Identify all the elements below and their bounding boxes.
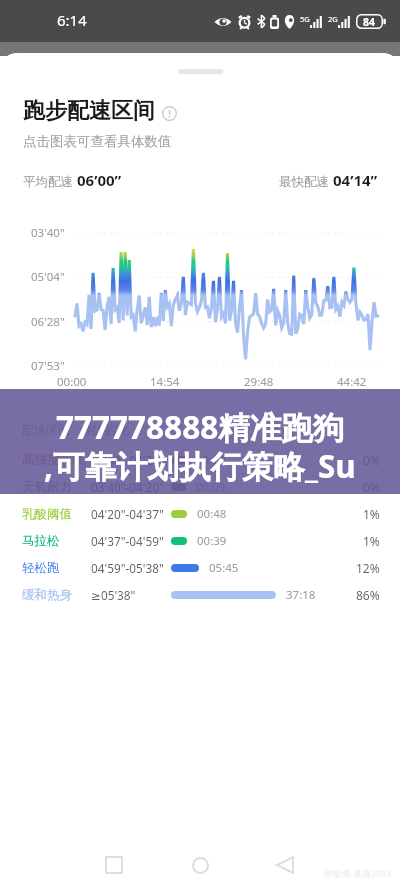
staticText: 37:18 (286, 587, 316, 603)
staticText: 平均配速 (23, 173, 77, 190)
staticText: 00:39 (197, 533, 227, 549)
staticText: 44:42 (337, 374, 367, 390)
staticText: 轻松跑 (22, 560, 60, 576)
staticText: 配速区间 (22, 422, 70, 437)
staticText: 1% (363, 506, 380, 522)
button[interactable]: Back (265, 845, 305, 885)
staticText: 29:48 (244, 374, 274, 390)
button[interactable]: 无氧耐力 (0, 473, 400, 500)
button[interactable]: 马拉松 (0, 527, 400, 554)
staticText: 04'59"-05'38" (91, 560, 164, 576)
staticText: 点击图表可查看具体数值 (23, 133, 172, 150)
staticText: 6:14 (57, 10, 87, 30)
staticText: 5G (300, 14, 310, 24)
staticText: 777778888精准跑狗 (56, 405, 345, 448)
staticText: ≥05'38" (91, 587, 136, 603)
staticText: ,可靠计划执行策略_Su (44, 444, 356, 487)
staticText: 04'20"-04'37" (91, 506, 164, 522)
staticText: 缓和热身 (22, 587, 72, 603)
staticText: 最快配速 (279, 173, 333, 190)
staticText: 0% (363, 452, 380, 468)
staticText: 03'40"-04'20" (91, 479, 164, 495)
staticText: 跑步配速区间 (23, 97, 155, 125)
staticText: 05:45 (209, 560, 239, 576)
staticText: 高强度间歇 (22, 452, 85, 468)
staticText: 无氧耐力 (22, 479, 72, 495)
staticText: 乳酸阈值 (22, 506, 72, 522)
button[interactable]: 高强度间歇 (0, 446, 400, 473)
staticText: 86% (356, 587, 380, 603)
staticText: 00:00 (57, 374, 87, 390)
staticText: 耗时 (86, 422, 110, 437)
staticText: 06’00” (77, 170, 122, 190)
staticText: 06'28" (31, 314, 65, 330)
staticText: 0% (363, 479, 380, 495)
staticText: 马拉松 (22, 533, 60, 549)
button[interactable]: Recents (94, 845, 134, 885)
staticText: 84 (363, 15, 376, 29)
staticText: 14:54 (150, 374, 180, 390)
staticText: 07'53" (31, 358, 65, 374)
staticText: 2G (328, 14, 338, 24)
staticText: 00:09 (196, 479, 226, 495)
staticText: 03'40"-04'20" (91, 452, 164, 468)
button[interactable]: Info (162, 106, 177, 121)
staticText: 占比 (106, 422, 130, 437)
staticText: 04'37"-04'59" (91, 533, 164, 549)
button[interactable]: 缓和热身 (0, 581, 400, 608)
button[interactable]: 乳酸阈值 (0, 500, 400, 527)
staticText: 1% (363, 533, 380, 549)
staticText: 03'40" (31, 225, 65, 241)
staticText: 05'04" (31, 269, 65, 285)
staticText: 04’14” (333, 170, 378, 190)
staticText: 00:09 (196, 452, 226, 468)
staticText: @微博-孤狼2018 (324, 867, 392, 879)
staticText: 00:48 (197, 506, 227, 522)
staticText: 12% (356, 560, 380, 576)
button[interactable]: Home (180, 845, 220, 885)
button[interactable]: 轻松跑 (0, 554, 400, 581)
